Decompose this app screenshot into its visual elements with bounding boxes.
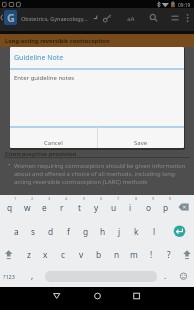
staticText: 7: [117, 196, 120, 201]
staticText: w: [24, 202, 31, 213]
button[interactable]: ?123: [0, 0, 12, 7]
button[interactable]: t: [71, 196, 88, 218]
staticText: x: [43, 249, 48, 260]
button[interactable]: [0, 243, 18, 265]
staticText: f: [67, 226, 70, 237]
staticText: ?: [167, 249, 171, 260]
staticText: 4: [65, 196, 68, 201]
staticText: 2: [31, 196, 34, 201]
staticText: Enter guideline notes: [14, 74, 75, 82]
staticText: G: [7, 10, 15, 25]
button[interactable]: [176, 266, 194, 286]
staticText: !: [150, 249, 153, 260]
staticText: o: [146, 202, 152, 213]
button[interactable]: e: [36, 196, 53, 218]
button[interactable]: c: [55, 243, 72, 265]
button[interactable]: z: [20, 243, 37, 265]
button[interactable]: G: [4, 10, 17, 25]
staticText: Guideline Note: [14, 53, 64, 63]
staticText: v: [79, 249, 84, 260]
button[interactable]: g: [77, 220, 94, 242]
staticText: y: [94, 202, 99, 213]
staticText: j: [118, 226, 121, 237]
staticText: 5: [83, 196, 86, 201]
button[interactable]: f: [60, 220, 77, 242]
button[interactable]: v: [73, 243, 90, 265]
button[interactable]: [0, 34, 194, 47]
staticText: c: [61, 249, 66, 260]
button[interactable]: ?: [160, 243, 177, 265]
staticText: n: [114, 249, 120, 260]
staticText: 0: [169, 196, 172, 201]
button[interactable]: [127, 288, 147, 304]
staticText: b: [96, 249, 102, 260]
staticText: 9: [152, 196, 155, 201]
button[interactable]: o: [140, 196, 157, 218]
button[interactable]: l: [146, 220, 163, 242]
button[interactable]: [146, 11, 161, 26]
button[interactable]: [178, 243, 194, 265]
button[interactable]: Save: [98, 127, 184, 148]
staticText: acting reversible contraception (LARC) m…: [14, 178, 148, 186]
staticText: 3: [48, 196, 51, 201]
button[interactable]: ,: [24, 264, 41, 286]
button[interactable]: aA: [0, 0, 8, 8]
staticText: 8: [135, 196, 138, 201]
staticText: p: [163, 202, 169, 213]
staticText: Contraceptive provision: [5, 150, 77, 158]
button[interactable]: s: [25, 220, 42, 242]
button[interactable]: w: [19, 196, 36, 218]
staticText: .: [164, 270, 167, 281]
staticText: i: [129, 202, 132, 213]
staticText: h: [100, 226, 106, 237]
button[interactable]: [88, 288, 108, 304]
button[interactable]: x: [37, 243, 54, 265]
button[interactable]: a: [8, 220, 25, 242]
staticText: q: [7, 202, 13, 213]
button[interactable]: b: [90, 243, 107, 265]
button[interactable]: [176, 196, 194, 218]
staticText: z: [27, 249, 31, 260]
staticText: 09:19: [178, 2, 191, 9]
button[interactable]: d: [42, 220, 59, 242]
staticText: a: [14, 226, 19, 237]
staticText: about and offered a choice of all method…: [14, 170, 177, 178]
staticText: 6: [100, 196, 103, 201]
staticText: r: [60, 202, 64, 213]
button[interactable]: r: [53, 196, 70, 218]
button[interactable]: [100, 11, 115, 26]
staticText: g: [83, 226, 89, 237]
staticText: m: [130, 249, 138, 260]
staticText: Long-acting reversible contraception: [5, 37, 110, 45]
button[interactable]: i: [122, 196, 139, 218]
staticText: Save: [134, 139, 148, 147]
staticText: k: [134, 226, 139, 237]
button[interactable]: h: [94, 220, 111, 242]
button[interactable]: [171, 220, 191, 242]
staticText: l: [153, 226, 156, 237]
button[interactable]: [168, 11, 183, 26]
button[interactable]: m: [125, 243, 142, 265]
staticText: d: [48, 226, 54, 237]
staticText: Women requiring contraception should be …: [14, 162, 186, 170]
button[interactable]: !: [143, 243, 160, 265]
button[interactable]: p: [157, 196, 174, 218]
staticText: s: [31, 226, 36, 237]
staticText: Obstetrics, Gynaecology...: [21, 15, 88, 22]
staticText: e: [42, 202, 47, 213]
button[interactable]: k: [128, 220, 145, 242]
button[interactable]: y: [88, 196, 105, 218]
button[interactable]: j: [111, 220, 128, 242]
button[interactable]: [182, 11, 194, 26]
button[interactable]: u: [105, 196, 122, 218]
button[interactable]: .: [157, 264, 174, 286]
staticText: •: [8, 161, 11, 169]
button[interactable]: q: [1, 196, 18, 218]
staticText: u: [111, 202, 117, 213]
staticText: t: [78, 202, 82, 213]
button[interactable]: n: [108, 243, 125, 265]
button[interactable]: [47, 288, 67, 304]
staticText: ,: [31, 270, 34, 281]
button[interactable]: Cancel: [10, 127, 97, 148]
